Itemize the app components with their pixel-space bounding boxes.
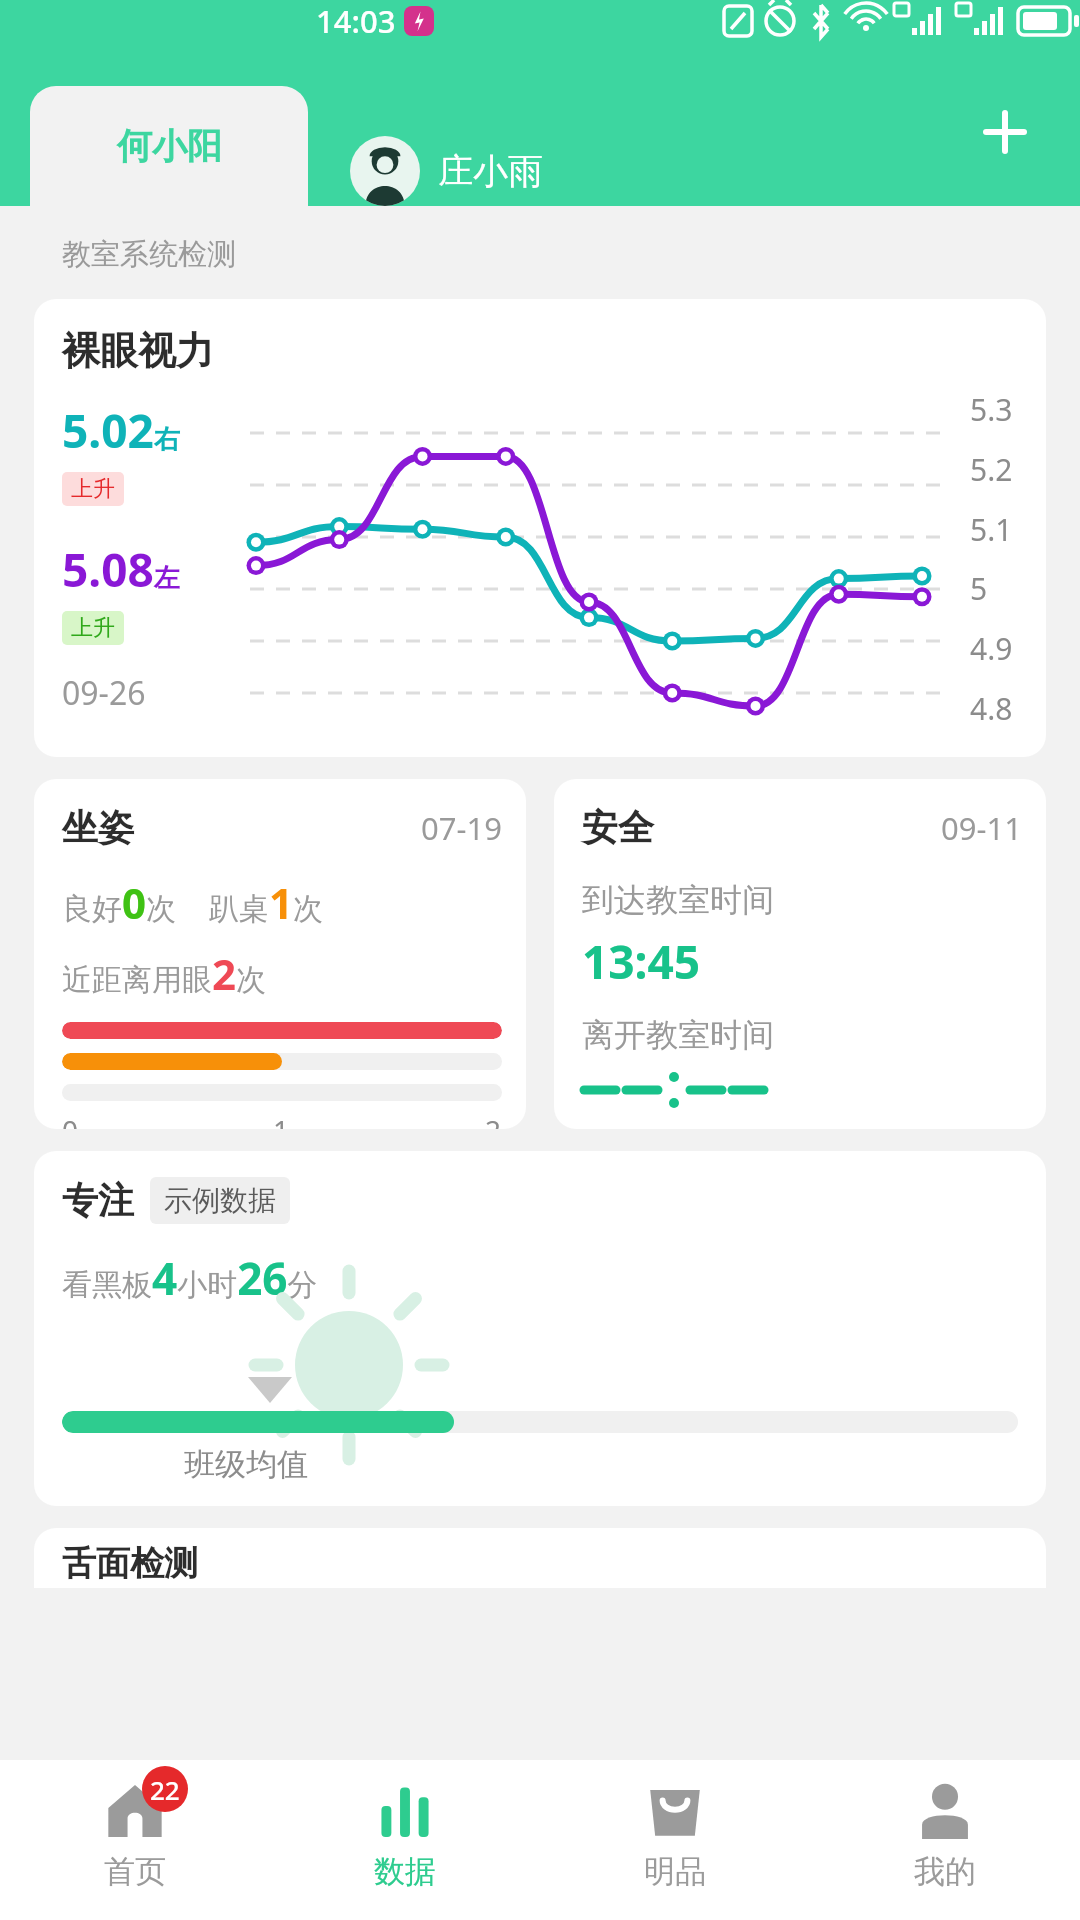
button[interactable]: 专注: [34, 1151, 1046, 1506]
staticText: 上升: [71, 475, 115, 503]
staticText: 良好0次: [62, 874, 177, 931]
staticText: 看黑板4小时26分: [62, 1248, 318, 1308]
staticText: 2: [485, 1111, 502, 1129]
staticText: 22: [150, 1772, 180, 1807]
staticText: 趴桌1次: [209, 874, 324, 931]
button[interactable]: 裸眼视力: [34, 299, 1046, 757]
staticText: 到达教室时间: [582, 880, 774, 920]
staticText: 5.3: [970, 389, 1013, 430]
button[interactable]: 何小阳: [30, 86, 308, 206]
button[interactable]: 我的: [810, 1760, 1080, 1920]
staticText: 明品: [644, 1852, 706, 1891]
staticText: 5: [970, 568, 988, 609]
staticText: 5.1: [970, 509, 1013, 550]
staticText: 5.08左: [62, 538, 180, 601]
staticText: 13:45: [582, 930, 701, 993]
staticText: 0: [62, 1111, 79, 1129]
staticText: 专注: [62, 1178, 134, 1223]
button[interactable]: 数据: [270, 1760, 540, 1920]
button[interactable]: 明品: [540, 1760, 810, 1920]
staticText: 裸眼视力: [62, 327, 214, 375]
staticText: 近距离用眼2次: [62, 945, 267, 1002]
staticText: 14:03: [316, 0, 396, 42]
staticText: 我的: [914, 1852, 976, 1891]
staticText: 庄小雨: [438, 149, 543, 193]
staticText: 4.9: [970, 628, 1013, 669]
button[interactable]: 庄小雨: [350, 136, 543, 206]
button[interactable]: 坐姿: [34, 779, 526, 1129]
staticText: 示例数据: [164, 1183, 276, 1218]
staticText: 舌面检测: [62, 1542, 198, 1585]
button[interactable]: 22: [0, 1760, 270, 1920]
staticText: 首页: [104, 1852, 166, 1891]
staticText: 09-26: [62, 671, 146, 715]
button[interactable]: 安全: [554, 779, 1046, 1129]
staticText: 坐姿: [62, 805, 134, 850]
staticText: 07-19: [421, 807, 502, 849]
staticText: 上升: [71, 614, 115, 642]
staticText: 离开教室时间: [582, 1015, 774, 1055]
staticText: 5.02右: [62, 399, 180, 462]
staticText: 教室系统检测: [62, 236, 236, 273]
staticText: 09-11: [941, 807, 1022, 849]
staticText: 安全: [582, 805, 654, 850]
button[interactable]: 添加: [930, 86, 1080, 206]
staticText: 5.2: [970, 449, 1013, 490]
staticText: 何小阳: [117, 124, 222, 168]
staticText: 班级均值: [184, 1445, 308, 1484]
button[interactable]: 舌面检测: [34, 1528, 1046, 1588]
staticText: 数据: [374, 1852, 436, 1891]
staticText: 1: [273, 1111, 290, 1129]
staticText: 4.8: [970, 688, 1013, 729]
